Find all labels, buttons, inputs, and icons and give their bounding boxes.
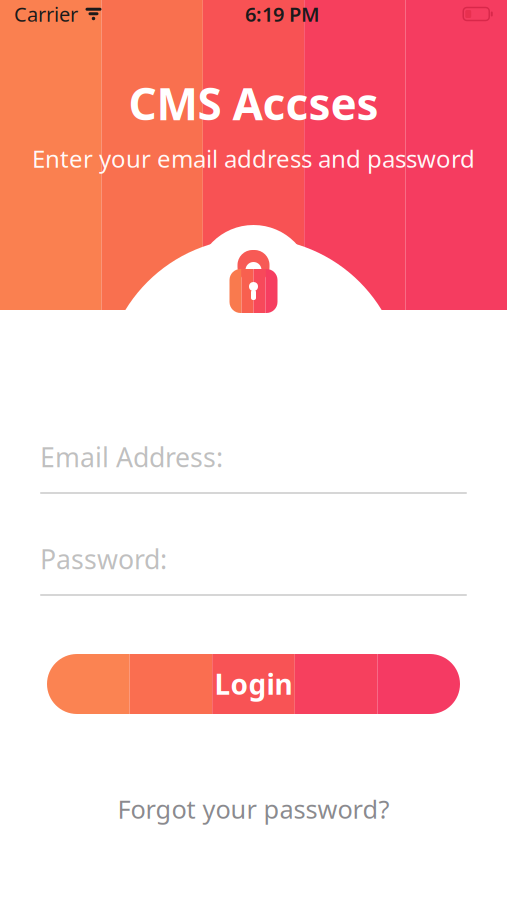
staticText: Enter your email address and password <box>32 142 475 174</box>
button[interactable]: Email Address: <box>40 440 467 494</box>
staticText: Email Address: <box>40 439 223 475</box>
staticText: 6:19 PM <box>245 1 320 27</box>
button[interactable]: Password: <box>40 542 467 596</box>
staticText: CMS Accses <box>128 74 378 132</box>
staticText: Login <box>214 665 292 703</box>
staticText: Forgot your password? <box>117 792 389 826</box>
button[interactable]: Forgot your password? <box>97 784 409 834</box>
staticText: Password: <box>40 541 167 577</box>
button[interactable]: Login <box>47 654 460 714</box>
staticText: Carrier <box>14 1 78 27</box>
